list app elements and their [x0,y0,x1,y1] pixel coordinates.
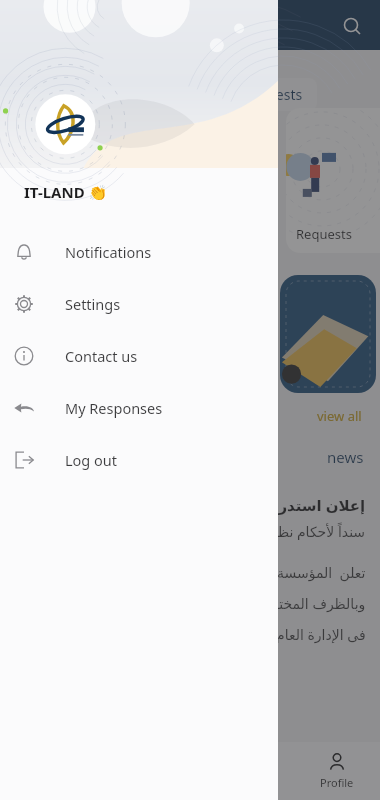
staticText: Contact us [65,346,138,366]
staticText: IT-LAND 👏 [24,182,108,202]
staticText: Profile [320,775,354,790]
staticText: news [327,447,364,467]
staticText: وبالظرف المختو [272,594,366,613]
staticText: فى الإدارة العام [276,625,366,644]
button[interactable]: Contact us [0,330,278,382]
staticText: My Responses [65,398,163,418]
button[interactable]: Requests [286,108,380,253]
button[interactable]: My Responses [0,382,278,434]
staticText: view all [317,407,362,425]
button[interactable]: Requests [228,78,317,111]
staticText: تعلن المؤسسة [277,563,366,582]
button[interactable]: Log out [0,434,278,486]
button[interactable]: Profile [316,748,358,794]
staticText: Log out [65,450,118,470]
staticText: Notifications [65,242,152,262]
button[interactable]: Settings [0,278,278,330]
staticText: سنداً لأحكام نظام [265,522,366,541]
staticText: Requests [242,85,303,104]
button[interactable]: Search [334,8,368,42]
button[interactable]: view all [313,403,366,429]
button[interactable] [280,275,376,393]
staticText: إعلان استدراج عر [239,495,366,515]
staticText: Requests [296,225,352,243]
staticText: Settings [65,294,121,314]
button[interactable]: Notifications [0,226,278,278]
